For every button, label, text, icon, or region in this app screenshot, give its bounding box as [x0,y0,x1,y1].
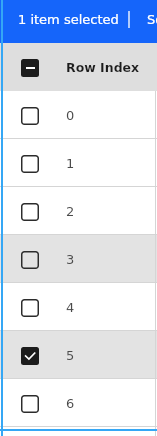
staticText: 0 [66,108,75,123]
staticText: 2 [66,204,75,219]
staticText: 1 item selected [18,12,119,27]
staticText: Sort [147,12,157,27]
staticText: 4 [66,300,75,315]
button[interactable]: Select row 6 [13,387,46,420]
staticText: 6 [66,396,75,411]
staticText: 1 [66,156,75,171]
button[interactable]: Select row 1 [0,139,157,187]
button[interactable]: Select row 3 [13,243,46,276]
button[interactable]: Row Index [66,60,140,75]
button[interactable]: Select row 2 [0,187,157,235]
button[interactable]: Select all rows [13,51,46,84]
staticText: 3 [66,252,75,267]
button[interactable]: Select row 5 [13,339,46,372]
button[interactable]: Select row 4 [13,291,46,324]
button[interactable]: Select row 2 [13,195,46,228]
button[interactable]: Select row 6 [0,379,157,427]
staticText: Row Index [66,60,140,75]
button[interactable]: Select row 0 [0,91,157,139]
button[interactable]: Select row 1 [13,147,46,180]
button[interactable]: Sort [147,12,157,27]
button[interactable]: Select row 5 [0,331,157,379]
button[interactable]: Select row 0 [13,99,46,132]
staticText: 5 [66,348,75,363]
button[interactable]: Select row 4 [0,283,157,331]
button[interactable]: Select row 3 [0,235,157,283]
